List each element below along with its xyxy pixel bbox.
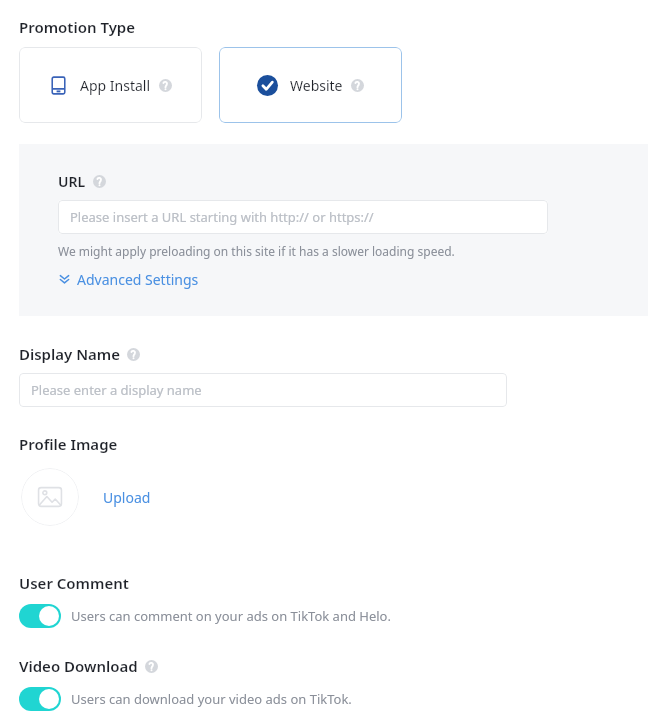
staticText: Profile Image — [19, 434, 118, 454]
staticText: Display Name — [19, 344, 120, 364]
staticText: We might apply preloading on this site i… — [58, 243, 455, 259]
staticText: URL — [58, 172, 86, 191]
staticText: Promotion Type — [19, 17, 136, 37]
staticText: Advanced Settings — [77, 270, 199, 289]
staticText: Video Download — [19, 656, 138, 676]
button[interactable]: Upload — [103, 488, 151, 507]
button[interactable]: Advanced Settings — [58, 270, 199, 289]
staticText: Website — [290, 76, 343, 95]
button[interactable]: Website — [219, 47, 402, 123]
staticText: Please insert a URL starting with http:/… — [70, 208, 374, 226]
staticText: Users can download your video ads on Tik… — [71, 690, 352, 708]
staticText: Please enter a display name — [31, 381, 202, 399]
staticText: User Comment — [19, 573, 129, 593]
button[interactable]: Help — [351, 79, 364, 92]
button[interactable]: Toggle on — [19, 604, 61, 628]
button[interactable]: Help — [159, 79, 172, 92]
staticText: App Install — [80, 76, 151, 95]
staticText: Users can comment on your ads on TikTok … — [71, 607, 391, 625]
button[interactable]: App Install — [19, 47, 202, 123]
button[interactable]: Toggle on — [19, 687, 61, 711]
button[interactable]: Please insert a URL starting with http:/… — [58, 200, 548, 234]
button[interactable]: Profile image placeholder — [21, 468, 79, 526]
button[interactable]: Help — [145, 660, 158, 673]
button[interactable]: Please enter a display name — [19, 373, 507, 407]
button[interactable]: Help — [127, 348, 140, 361]
button[interactable]: Help — [93, 175, 106, 188]
staticText: Upload — [103, 488, 151, 507]
